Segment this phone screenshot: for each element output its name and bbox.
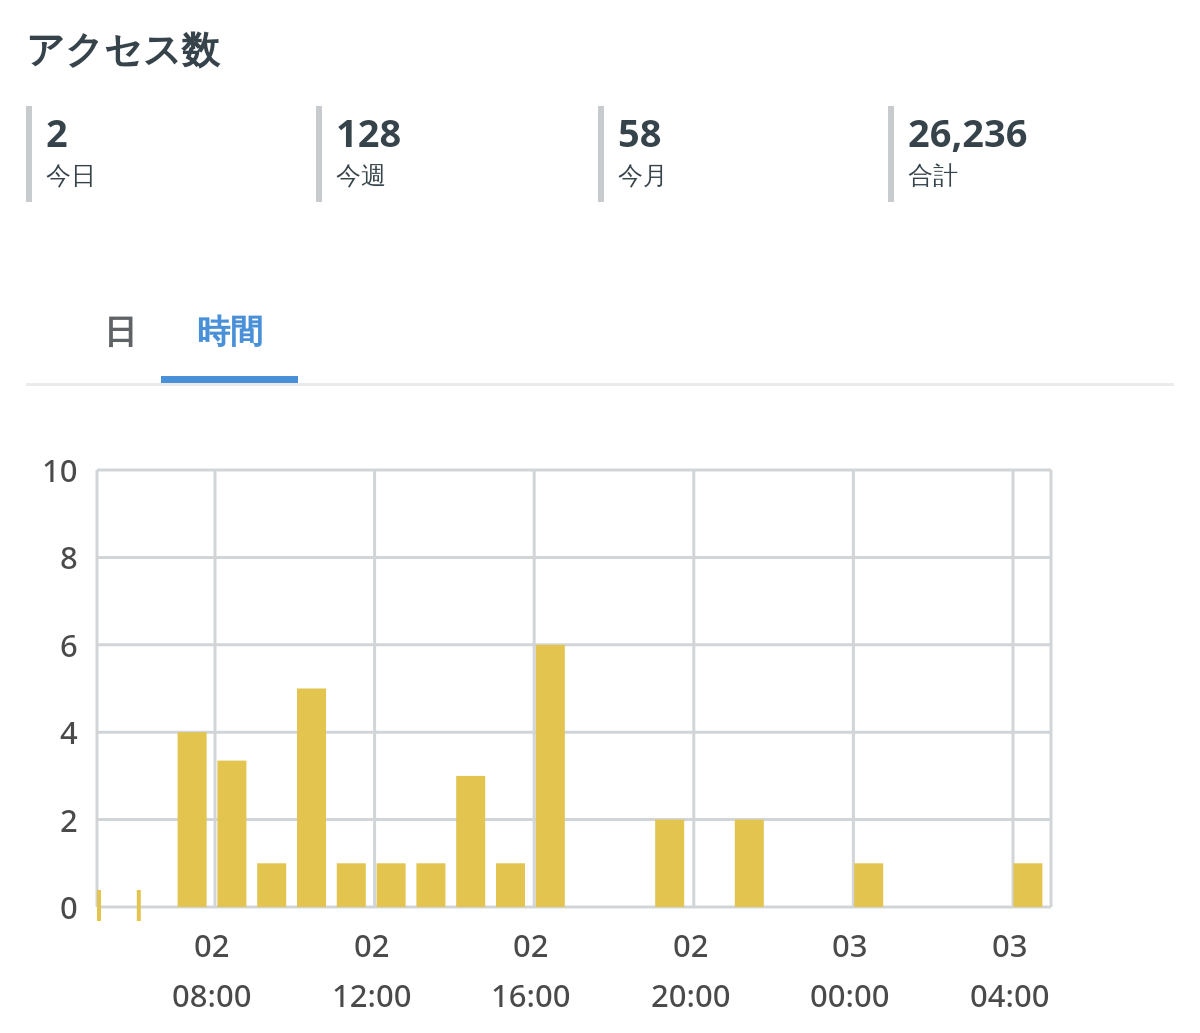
staticText: 今週 xyxy=(336,160,386,191)
staticText: 4 xyxy=(60,711,78,753)
button[interactable]: 日 xyxy=(78,288,162,376)
staticText: 6 xyxy=(60,624,78,666)
staticText: 2 xyxy=(46,106,68,158)
staticText: 16:00 xyxy=(491,974,571,1016)
staticText: 02 xyxy=(673,924,709,966)
button[interactable]: 26,236 xyxy=(888,106,1174,202)
button[interactable]: 58 xyxy=(598,106,880,202)
staticText: 26,236 xyxy=(908,106,1028,158)
staticText: 03 xyxy=(992,924,1028,966)
staticText: 8 xyxy=(60,536,78,578)
staticText: 02 xyxy=(513,924,549,966)
staticText: 58 xyxy=(618,106,662,158)
staticText: 03 xyxy=(832,924,868,966)
staticText: 今日 xyxy=(46,160,96,191)
staticText: 128 xyxy=(336,106,402,158)
staticText: 00:00 xyxy=(810,974,890,1016)
button[interactable]: 時間 xyxy=(161,288,298,376)
staticText: 12:00 xyxy=(332,974,412,1016)
staticText: 0 xyxy=(60,886,78,928)
staticText: 20:00 xyxy=(651,974,731,1016)
staticText: 02 xyxy=(194,924,230,966)
staticText: アクセス数 xyxy=(26,26,220,74)
staticText: 合計 xyxy=(908,160,958,191)
staticText: 04:00 xyxy=(970,974,1050,1016)
staticText: 日 xyxy=(104,311,137,353)
staticText: 08:00 xyxy=(172,974,252,1016)
staticText: 10 xyxy=(42,449,78,491)
staticText: 時間 xyxy=(197,311,263,353)
staticText: 今月 xyxy=(618,160,668,191)
button[interactable]: 128 xyxy=(316,106,590,202)
staticText: 2 xyxy=(60,799,78,841)
staticText: 02 xyxy=(354,924,390,966)
button[interactable]: 2 xyxy=(26,106,306,202)
